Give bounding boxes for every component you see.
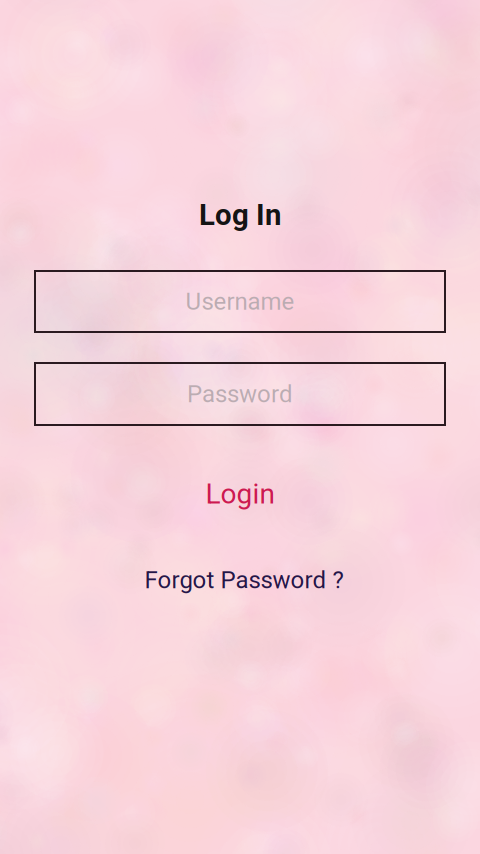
button[interactable]: Login [205,478,274,510]
staticText: Password [187,380,293,408]
button[interactable]: Forgot Password ? [144,566,343,594]
staticText: Log In [199,198,281,232]
staticText: Login [205,478,274,510]
staticText: Forgot Password ? [144,566,343,594]
button[interactable]: Password [35,363,445,425]
button[interactable]: Username [35,271,445,332]
staticText: Username [185,287,294,315]
